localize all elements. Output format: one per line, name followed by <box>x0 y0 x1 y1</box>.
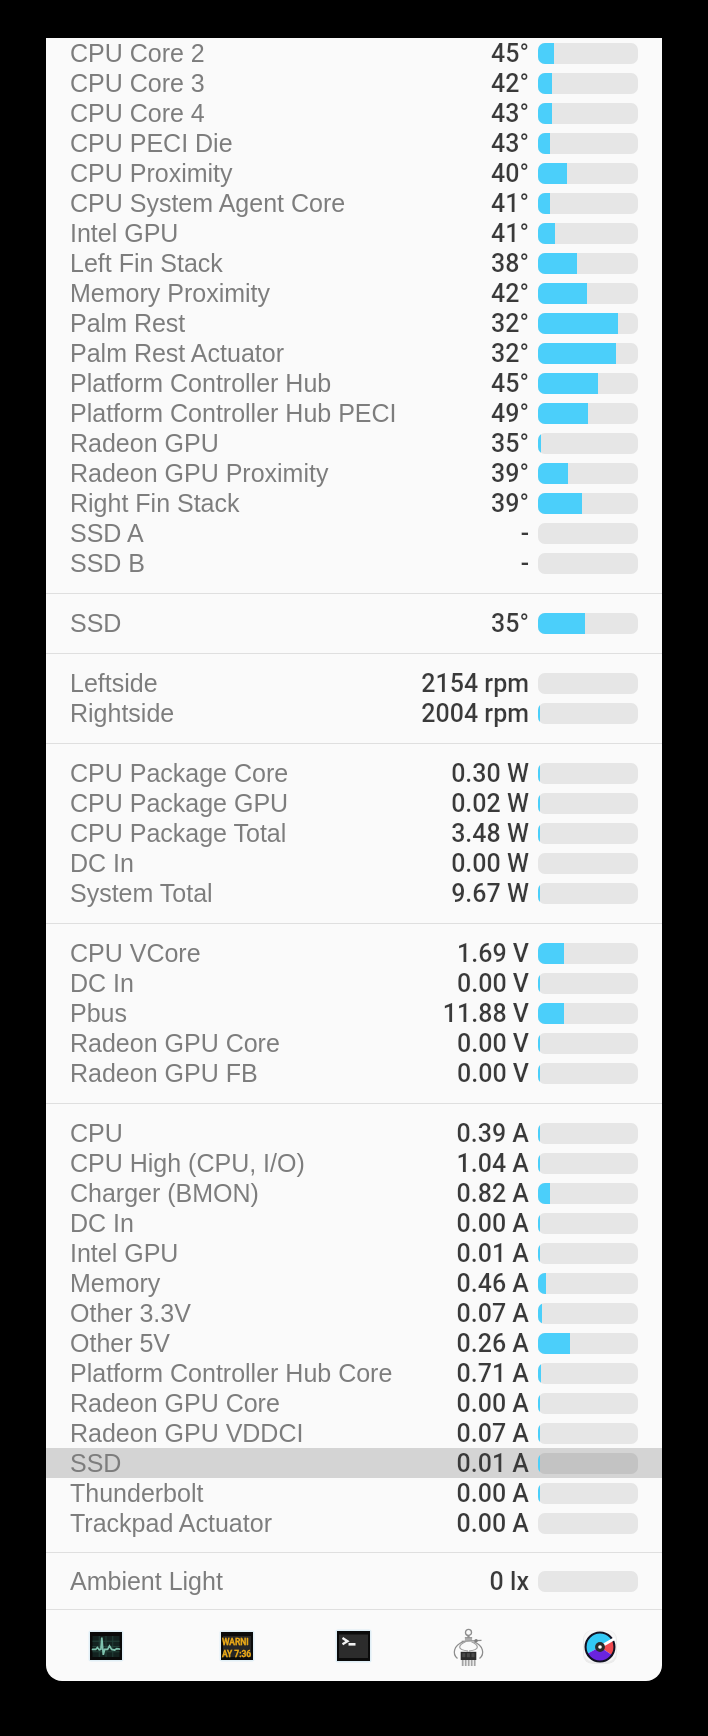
button[interactable]: Intel GPU <box>46 1238 662 1268</box>
button[interactable]: Thunderbolt <box>46 1478 662 1508</box>
button[interactable]: CPU <box>46 1118 662 1148</box>
staticText: 0.82 A <box>456 1179 529 1208</box>
button[interactable]: Radeon GPU VDDCI <box>46 1418 662 1448</box>
button[interactable]: DC In <box>46 1208 662 1238</box>
staticText: Platform Controller Hub PECI <box>70 399 397 427</box>
staticText: 32° <box>491 309 529 338</box>
staticText: 49° <box>491 399 529 428</box>
staticText: Trackpad Actuator <box>70 1509 272 1537</box>
staticText: 42° <box>491 279 529 308</box>
button[interactable]: System Warnings <box>211 1620 263 1672</box>
staticText: DC In <box>70 849 134 877</box>
button[interactable]: iStat Menus <box>574 1621 626 1673</box>
staticText: 43° <box>491 99 529 128</box>
button[interactable]: Palm Rest Actuator <box>46 338 662 368</box>
staticText: 1.04 A <box>456 1149 529 1178</box>
button[interactable]: Other 3.3V <box>46 1298 662 1328</box>
button[interactable]: SSD B <box>46 548 662 578</box>
staticText: 0 lx <box>489 1567 529 1596</box>
button[interactable]: Pbus <box>46 998 662 1028</box>
staticText: 45° <box>491 39 529 68</box>
staticText: Left Fin Stack <box>70 249 223 277</box>
staticText: CPU Package Total <box>70 819 287 847</box>
staticText: 0.00 V <box>456 969 529 998</box>
staticText: DC In <box>70 1209 134 1237</box>
button[interactable]: Rightside <box>46 698 662 728</box>
button[interactable]: System Total <box>46 878 662 908</box>
button[interactable]: CPU Core 4 <box>46 98 662 128</box>
button[interactable]: Radeon GPU FB <box>46 1058 662 1088</box>
button[interactable]: CPU Proximity <box>46 158 662 188</box>
button[interactable]: Radeon GPU Core <box>46 1388 662 1418</box>
staticText: 0.01 A <box>456 1449 529 1478</box>
staticText: Platform Controller Hub <box>70 369 332 397</box>
staticText: SSD <box>70 609 122 637</box>
staticText: 45° <box>491 369 529 398</box>
staticText: Intel GPU <box>70 219 179 247</box>
button[interactable]: Other 5V <box>46 1328 662 1358</box>
staticText: SSD A <box>70 519 144 547</box>
button[interactable]: Radeon GPU <box>46 428 662 458</box>
button[interactable]: Trackpad Actuator <box>46 1508 662 1538</box>
button[interactable]: CPU Package Core <box>46 758 662 788</box>
staticText: - <box>520 549 529 578</box>
staticText: Radeon GPU Core <box>70 1389 280 1417</box>
staticText: Pbus <box>70 999 127 1027</box>
button[interactable]: CPU Package Total <box>46 818 662 848</box>
button[interactable]: Platform Controller Hub <box>46 368 662 398</box>
button[interactable]: Intel GPU <box>46 218 662 248</box>
button[interactable]: CPU Core 3 <box>46 68 662 98</box>
staticText: Rightside <box>70 699 175 727</box>
button[interactable]: Ambient Light <box>46 1566 662 1596</box>
staticText: 38° <box>491 249 529 278</box>
staticText: 2004 rpm <box>421 699 529 728</box>
staticText: SSD <box>70 1449 122 1477</box>
staticText: 0.71 A <box>456 1359 529 1388</box>
button[interactable]: Right Fin Stack <box>46 488 662 518</box>
staticText: Radeon GPU Core <box>70 1029 280 1057</box>
staticText: WARNIN <box>222 1637 253 1647</box>
button[interactable]: Hardware Sensors <box>442 1621 494 1673</box>
staticText: Ambient Light <box>70 1567 223 1595</box>
button[interactable]: CPU Package GPU <box>46 788 662 818</box>
button[interactable]: Memory Proximity <box>46 278 662 308</box>
button[interactable]: Terminal <box>327 1620 379 1672</box>
button[interactable]: Radeon GPU Core <box>46 1028 662 1058</box>
staticText: Memory Proximity <box>70 279 271 307</box>
button[interactable]: Leftside <box>46 668 662 698</box>
staticText: 35° <box>491 609 529 638</box>
button[interactable]: SSD A <box>46 518 662 548</box>
staticText: DC In <box>70 969 134 997</box>
button[interactable]: Palm Rest <box>46 308 662 338</box>
staticText: 0.00 A <box>456 1389 529 1418</box>
button[interactable]: CPU Core 2 <box>46 38 662 68</box>
button[interactable]: Platform Controller Hub PECI <box>46 398 662 428</box>
staticText: 0.07 A <box>456 1299 529 1328</box>
button[interactable]: Radeon GPU Proximity <box>46 458 662 488</box>
button[interactable]: DC In <box>46 848 662 878</box>
button[interactable]: DC In <box>46 968 662 998</box>
button[interactable]: CPU VCore <box>46 938 662 968</box>
staticText: CPU Package Core <box>70 759 289 787</box>
button[interactable]: Platform Controller Hub Core <box>46 1358 662 1388</box>
staticText: Intel GPU <box>70 1239 179 1267</box>
staticText: CPU System Agent Core <box>70 189 346 217</box>
staticText: 0.07 A <box>456 1419 529 1448</box>
staticText: 39° <box>491 489 529 518</box>
button[interactable]: Memory <box>46 1268 662 1298</box>
staticText: 35° <box>491 429 529 458</box>
staticText: CPU Core 4 <box>70 99 205 127</box>
staticText: AY 7:36 <box>222 1649 252 1659</box>
staticText: 0.00 V <box>456 1059 529 1088</box>
button[interactable]: CPU High (CPU, I/O) <box>46 1148 662 1178</box>
button[interactable]: Activity Monitor <box>80 1620 132 1672</box>
button[interactable]: SSD <box>46 608 662 638</box>
button[interactable]: Left Fin Stack <box>46 248 662 278</box>
staticText: Other 3.3V <box>70 1299 191 1327</box>
button[interactable]: SSD <box>46 1448 662 1478</box>
staticText: Right Fin Stack <box>70 489 240 517</box>
button[interactable]: CPU PECI Die <box>46 128 662 158</box>
button[interactable]: CPU System Agent Core <box>46 188 662 218</box>
button[interactable]: Charger (BMON) <box>46 1178 662 1208</box>
staticText: Radeon GPU Proximity <box>70 459 329 487</box>
